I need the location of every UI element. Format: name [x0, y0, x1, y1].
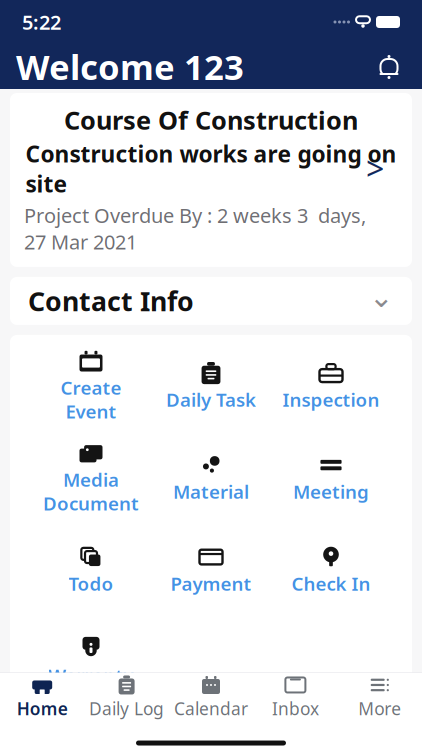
button[interactable]: Payment: [151, 531, 271, 609]
staticText: Inbox: [272, 697, 319, 720]
staticText: Meeting: [293, 479, 369, 504]
button[interactable]: Check In: [271, 531, 391, 609]
staticText: Todo: [68, 571, 113, 596]
button[interactable]: Todo: [31, 531, 151, 609]
button[interactable]: Home: [0, 673, 84, 722]
button[interactable]: Inspection: [271, 347, 391, 425]
staticText: Home: [17, 697, 68, 720]
button[interactable]: Create Event: [31, 347, 151, 425]
staticText: ⌄: [369, 280, 394, 314]
button[interactable]: Contact Info: [10, 277, 412, 325]
staticText: Course Of Construction: [64, 103, 358, 137]
staticText: Event: [65, 399, 116, 424]
button[interactable]: Inbox: [253, 673, 338, 722]
button[interactable]: More: [338, 673, 422, 722]
staticText: Daily Log: [89, 697, 164, 720]
staticText: Create: [60, 375, 121, 400]
staticText: Welcome 123: [16, 43, 244, 89]
button[interactable]: Material: [151, 439, 271, 517]
button[interactable]: Course Of Construction: [10, 93, 412, 267]
staticText: Material: [173, 479, 249, 504]
staticText: Project Overdue By : 2 weeks 3 days, 27 …: [24, 202, 366, 255]
button[interactable]: Notifications: [372, 49, 406, 83]
staticText: Daily Task: [166, 387, 256, 412]
button[interactable]: Calendar: [169, 673, 253, 722]
button[interactable]: Daily Task: [151, 347, 271, 425]
staticText: More: [358, 697, 401, 720]
staticText: Payment: [170, 571, 251, 596]
staticText: >: [366, 147, 384, 189]
staticText: Warranty: [48, 663, 133, 688]
button[interactable]: Media Document: [31, 439, 151, 517]
staticText: Media: [63, 467, 119, 492]
staticText: Daily log - Pending Approval: [14, 727, 387, 750]
button[interactable]: Daily Log: [84, 673, 169, 722]
staticText: Inspection: [282, 387, 379, 412]
staticText: 5:22: [22, 9, 61, 35]
button[interactable]: Warranty: [31, 623, 151, 701]
staticText: Check In: [291, 571, 370, 596]
staticText: Calendar: [174, 697, 248, 720]
staticText: Construction works are going on site: [25, 139, 396, 199]
staticText: Contact Info: [28, 283, 194, 319]
button[interactable]: Meeting: [271, 439, 391, 517]
staticText: Document: [43, 491, 139, 516]
